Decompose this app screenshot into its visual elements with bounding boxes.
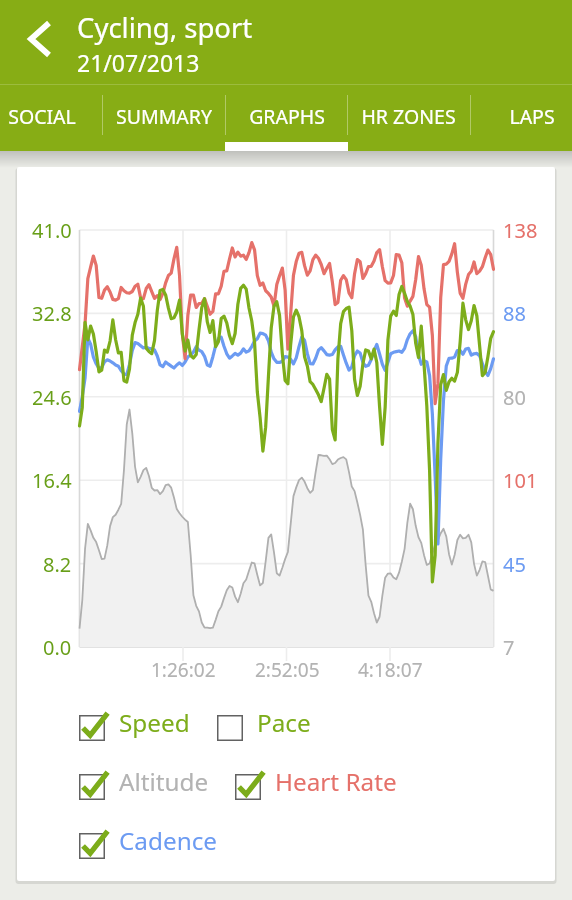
staticText: 88 bbox=[503, 300, 526, 327]
button[interactable]: Altitude bbox=[79, 768, 209, 801]
button[interactable]: Cadence bbox=[79, 827, 218, 860]
staticText: 2:52:05 bbox=[255, 657, 320, 683]
staticText: Heart Rate bbox=[275, 765, 397, 798]
button[interactable]: Speed bbox=[79, 709, 190, 742]
staticText: 101 bbox=[503, 467, 538, 494]
staticText: 4:18:07 bbox=[358, 657, 423, 683]
staticText: Cycling, sport bbox=[77, 9, 253, 46]
button[interactable]: SUMMARY bbox=[102, 84, 225, 151]
button[interactable]: Heart Rate bbox=[235, 768, 397, 801]
staticText: Altitude bbox=[119, 765, 209, 798]
button[interactable]: SOCIAL bbox=[0, 84, 103, 151]
staticText: 21/07/2013 bbox=[77, 47, 200, 78]
staticText: GRAPHS bbox=[249, 103, 325, 130]
staticText: 32.8 bbox=[32, 300, 72, 327]
staticText: Cadence bbox=[119, 824, 218, 857]
button[interactable]: GRAPHS bbox=[225, 84, 348, 151]
staticText: 45 bbox=[503, 551, 526, 578]
button[interactable]: LAPS bbox=[470, 84, 572, 151]
staticText: Pace bbox=[257, 706, 311, 739]
staticText: SOCIAL bbox=[8, 103, 76, 130]
staticText: Speed bbox=[119, 706, 190, 739]
staticText: LAPS bbox=[509, 103, 555, 130]
staticText: 8.2 bbox=[43, 551, 72, 578]
staticText: 41.0 bbox=[32, 217, 72, 244]
staticText: 80 bbox=[503, 384, 526, 411]
staticText: 16.4 bbox=[32, 467, 72, 494]
staticText: HR ZONES bbox=[361, 103, 456, 130]
staticText: 0.0 bbox=[43, 634, 72, 661]
button[interactable]: Back bbox=[0, 0, 78, 84]
staticText: 7 bbox=[503, 634, 515, 661]
button[interactable]: HR ZONES bbox=[347, 84, 470, 151]
staticText: 1:26:02 bbox=[151, 657, 216, 683]
staticText: 138 bbox=[503, 217, 538, 244]
staticText: 24.6 bbox=[32, 384, 72, 411]
staticText: SUMMARY bbox=[116, 103, 212, 130]
button[interactable]: Pace bbox=[217, 709, 311, 742]
